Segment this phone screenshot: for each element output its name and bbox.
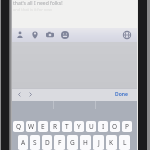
staticText: O — [112, 122, 118, 131]
button[interactable]: Contact — [14, 29, 26, 41]
staticText: D — [45, 138, 50, 147]
button[interactable]: Previous field — [15, 90, 24, 99]
staticText: E — [41, 122, 45, 131]
staticText: Y — [77, 122, 81, 131]
staticText: S — [33, 138, 37, 147]
button[interactable]: G — [67, 135, 78, 150]
staticText: K — [109, 138, 114, 147]
staticText: and that is it for now — [13, 7, 52, 12]
button[interactable]: D — [42, 135, 52, 150]
staticText: T — [65, 122, 69, 131]
staticText: I — [102, 122, 105, 131]
staticText: G — [70, 138, 75, 147]
button[interactable]: R — [50, 121, 60, 132]
button[interactable]: Q — [13, 121, 24, 132]
staticText: W — [28, 122, 35, 131]
button[interactable]: U — [86, 121, 96, 132]
button[interactable]: I — [98, 121, 108, 132]
button[interactable]: T — [62, 121, 72, 132]
staticText: R — [53, 122, 58, 131]
button[interactable]: H — [80, 135, 91, 150]
button[interactable]: K — [106, 135, 117, 150]
button[interactable]: Emoji — [59, 29, 71, 41]
button[interactable]: W — [26, 121, 36, 132]
button[interactable]: S — [30, 135, 40, 150]
button[interactable]: Camera — [44, 29, 56, 41]
button[interactable]: Globe — [121, 29, 133, 41]
button[interactable]: O — [110, 121, 120, 132]
button[interactable]: A — [18, 135, 28, 150]
staticText: Done — [115, 91, 128, 98]
staticText: J — [98, 138, 100, 147]
button[interactable]: Location — [29, 29, 41, 41]
button[interactable]: P — [122, 121, 132, 132]
staticText: that's all I need folks! — [13, 0, 63, 7]
staticText: U — [89, 122, 94, 131]
button[interactable]: F — [54, 135, 65, 150]
staticText: H — [83, 138, 88, 147]
button[interactable]: L — [119, 135, 130, 150]
staticText: F — [58, 138, 62, 147]
button[interactable]: Y — [74, 121, 84, 132]
button[interactable]: Done — [113, 89, 130, 100]
staticText: A — [21, 138, 26, 147]
button[interactable]: J — [93, 135, 104, 150]
button[interactable]: E — [38, 121, 48, 132]
staticText: L — [123, 138, 127, 147]
button[interactable]: Next field — [26, 90, 35, 99]
staticText: P — [125, 122, 129, 131]
staticText: Q — [16, 122, 22, 131]
